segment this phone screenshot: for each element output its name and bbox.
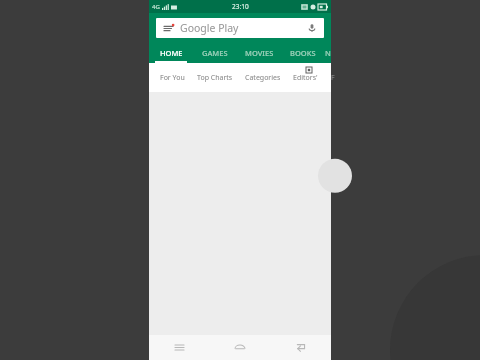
- button[interactable]: Top Charts: [191, 63, 239, 92]
- staticText: HOME: [160, 48, 183, 58]
- staticText: N: [325, 48, 331, 58]
- button[interactable]: GAMES: [193, 42, 237, 63]
- staticText: GAMES: [202, 48, 228, 58]
- button[interactable]: MOVIES: [237, 42, 281, 63]
- other: Open navigation menu: [162, 22, 174, 34]
- staticText: BOOKS: [290, 48, 316, 58]
- button[interactable]: For You: [154, 63, 191, 92]
- staticText: Google Play: [180, 21, 239, 35]
- button[interactable]: HOME: [149, 42, 193, 63]
- staticText: Categories: [245, 73, 281, 83]
- button[interactable]: Open navigation menu: [156, 18, 324, 38]
- button[interactable]: Home: [209, 335, 270, 360]
- button[interactable]: N: [325, 42, 331, 63]
- button[interactable]: BOOKS: [281, 42, 325, 63]
- staticText: Top Charts: [197, 73, 233, 83]
- staticText: 23:10: [232, 2, 249, 11]
- other: Voice search: [306, 22, 318, 34]
- button[interactable]: Editors' Cho...: [287, 63, 331, 92]
- staticText: 4G: [152, 3, 160, 11]
- staticText: MOVIES: [245, 48, 274, 58]
- button[interactable]: Categories: [239, 63, 287, 92]
- button[interactable]: Recent apps: [149, 335, 209, 360]
- staticText: Editors' Cho...: [293, 73, 325, 83]
- button[interactable]: Back: [270, 335, 331, 360]
- staticText: For You: [160, 73, 185, 83]
